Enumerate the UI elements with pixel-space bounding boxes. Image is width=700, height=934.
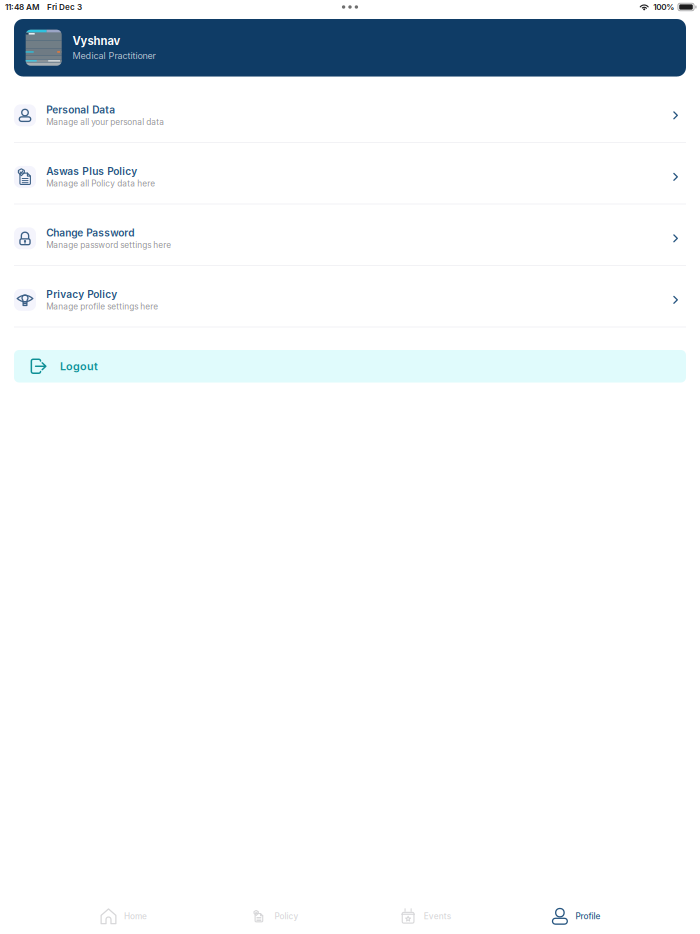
button[interactable]: Aswas Plus Policy	[0, 143, 700, 203]
staticText: Profile	[575, 911, 600, 921]
button[interactable]: Profile	[501, 886, 652, 934]
staticText: Manage profile settings here	[46, 302, 158, 312]
staticText: Manage password settings here	[46, 240, 171, 250]
staticText: Manage all Policy data here	[46, 179, 155, 189]
staticText: Personal Data	[46, 104, 115, 116]
button[interactable]: Home	[48, 886, 199, 934]
staticText: Logout	[60, 360, 98, 373]
staticText: 100%	[653, 2, 674, 12]
button[interactable]: Privacy Policy	[0, 266, 700, 326]
button[interactable]: Personal Data	[0, 81, 700, 142]
staticText: Fri Dec 3	[47, 2, 82, 12]
staticText: Medical Practitioner	[72, 50, 155, 61]
button[interactable]: Change Password	[0, 204, 700, 265]
staticText: Privacy Policy	[46, 288, 117, 300]
staticText: Policy	[274, 911, 298, 921]
staticText: Events	[424, 911, 451, 921]
button[interactable]: Events	[350, 886, 501, 934]
button[interactable]: Vyshnav	[0, 19, 700, 76]
staticText: Home	[124, 911, 147, 921]
staticText: 11:48 AM	[5, 2, 40, 12]
button[interactable]: Logout	[0, 350, 700, 382]
staticText: Vyshnav	[72, 34, 120, 48]
staticText: Manage all your personal data	[46, 117, 164, 127]
staticText: Aswas Plus Policy	[46, 165, 137, 177]
button[interactable]: Policy	[199, 886, 350, 934]
staticText: Change Password	[46, 227, 134, 239]
